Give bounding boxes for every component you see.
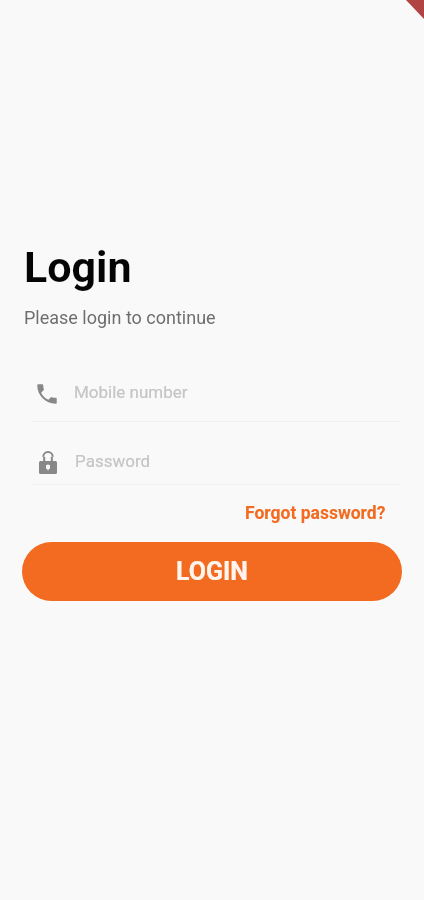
staticText: Password <box>75 451 151 471</box>
button[interactable]: Forgot password? <box>235 497 400 530</box>
button[interactable]: LOGIN <box>22 542 402 601</box>
staticText: Mobile number <box>74 382 188 402</box>
staticText: Forgot password? <box>245 503 386 524</box>
staticText: LOGIN <box>176 557 248 586</box>
staticText: Please login to continue <box>24 307 216 328</box>
button[interactable]: Password <box>0 445 424 477</box>
button[interactable]: Mobile number <box>0 376 424 408</box>
staticText: Login <box>24 242 132 292</box>
